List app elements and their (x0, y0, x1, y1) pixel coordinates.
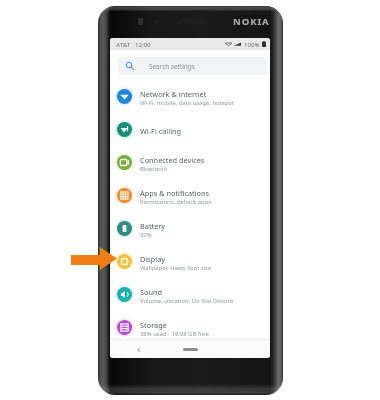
button[interactable]: Back (135, 346, 143, 354)
staticText: 38% used - 19.98 GB free (140, 330, 209, 338)
staticText: Wallpaper, sleep, font size (140, 264, 212, 272)
staticText: NOKIA (233, 15, 270, 28)
button[interactable]: Sound (110, 278, 270, 311)
button[interactable]: Apps & notifications (110, 179, 270, 212)
staticText: Connected devices (140, 155, 205, 165)
staticText: Apps & notifications (140, 188, 210, 198)
staticText: Storage (140, 320, 167, 330)
staticText: Sound (140, 287, 163, 297)
staticText: Display (140, 254, 166, 264)
staticText: 100% (244, 40, 260, 48)
button[interactable]: Home (183, 348, 198, 351)
button[interactable]: Wi-Fi calling (110, 113, 270, 146)
staticText: Network & internet (140, 89, 207, 99)
button[interactable]: Search settings (118, 57, 266, 75)
staticText: Volume, vibration, Do Not Disturb (140, 297, 234, 305)
staticText: Search settings (149, 62, 195, 71)
button[interactable]: Storage (110, 311, 270, 344)
staticText: Permissions, default apps (140, 198, 212, 206)
staticText: AT&T 12:00 (116, 40, 151, 48)
staticText: Wi-Fi, mobile, data usage, hotspot (140, 99, 234, 107)
button[interactable]: Battery (110, 212, 270, 245)
staticText: 97% (140, 231, 152, 239)
staticText: Battery (140, 221, 166, 231)
button[interactable]: Display (110, 245, 270, 278)
button[interactable]: Connected devices (110, 146, 270, 179)
other: Pointer to Display (71, 247, 117, 270)
staticText: Bluetooth (140, 165, 168, 173)
button[interactable]: Network & internet (110, 80, 270, 113)
staticText: Wi-Fi calling (140, 126, 182, 136)
